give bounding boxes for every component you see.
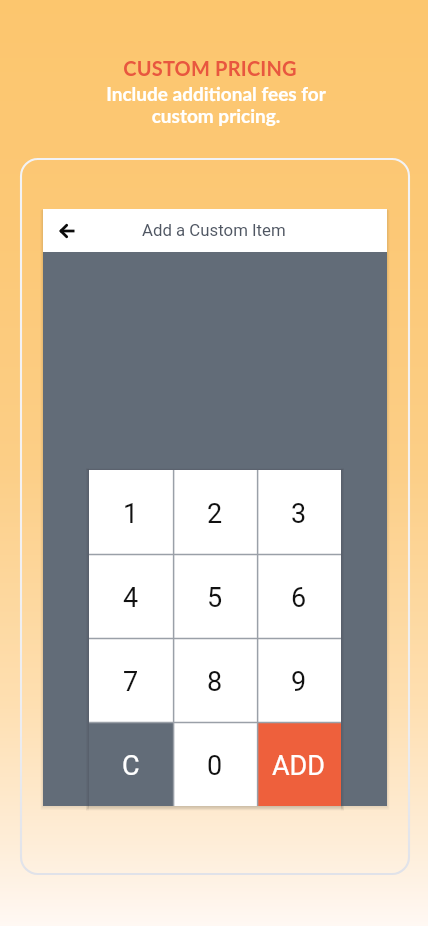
button[interactable]: ADD	[257, 722, 341, 806]
button[interactable]: C	[89, 722, 173, 806]
staticText: 0	[207, 750, 223, 782]
staticText: 8	[207, 666, 223, 698]
button[interactable]: 5	[173, 554, 257, 638]
staticText: C	[122, 750, 140, 782]
staticText: 1	[123, 498, 139, 530]
button[interactable]: 1	[89, 470, 173, 554]
button[interactable]: 9	[257, 638, 341, 722]
button[interactable]: 2	[173, 470, 257, 554]
staticText: 6	[291, 582, 307, 614]
staticText: 2	[207, 498, 223, 530]
button[interactable]: 4	[89, 554, 173, 638]
staticText: Include additional fees for custom prici…	[106, 82, 326, 127]
staticText: Add a Custom Item	[142, 220, 286, 240]
staticText: 9	[291, 666, 307, 698]
staticText: ADD	[272, 750, 326, 782]
staticText: 7	[123, 666, 139, 698]
staticText: 5	[207, 582, 223, 614]
button[interactable]: 0	[173, 722, 257, 806]
button[interactable]: 6	[257, 554, 341, 638]
staticText: CUSTOM PRICING	[123, 56, 297, 80]
button[interactable]: 8	[173, 638, 257, 722]
button[interactable]: Back	[51, 215, 83, 247]
button[interactable]: 3	[257, 470, 341, 554]
staticText: 3	[291, 498, 307, 530]
button[interactable]: 7	[89, 638, 173, 722]
staticText: 4	[123, 582, 139, 614]
